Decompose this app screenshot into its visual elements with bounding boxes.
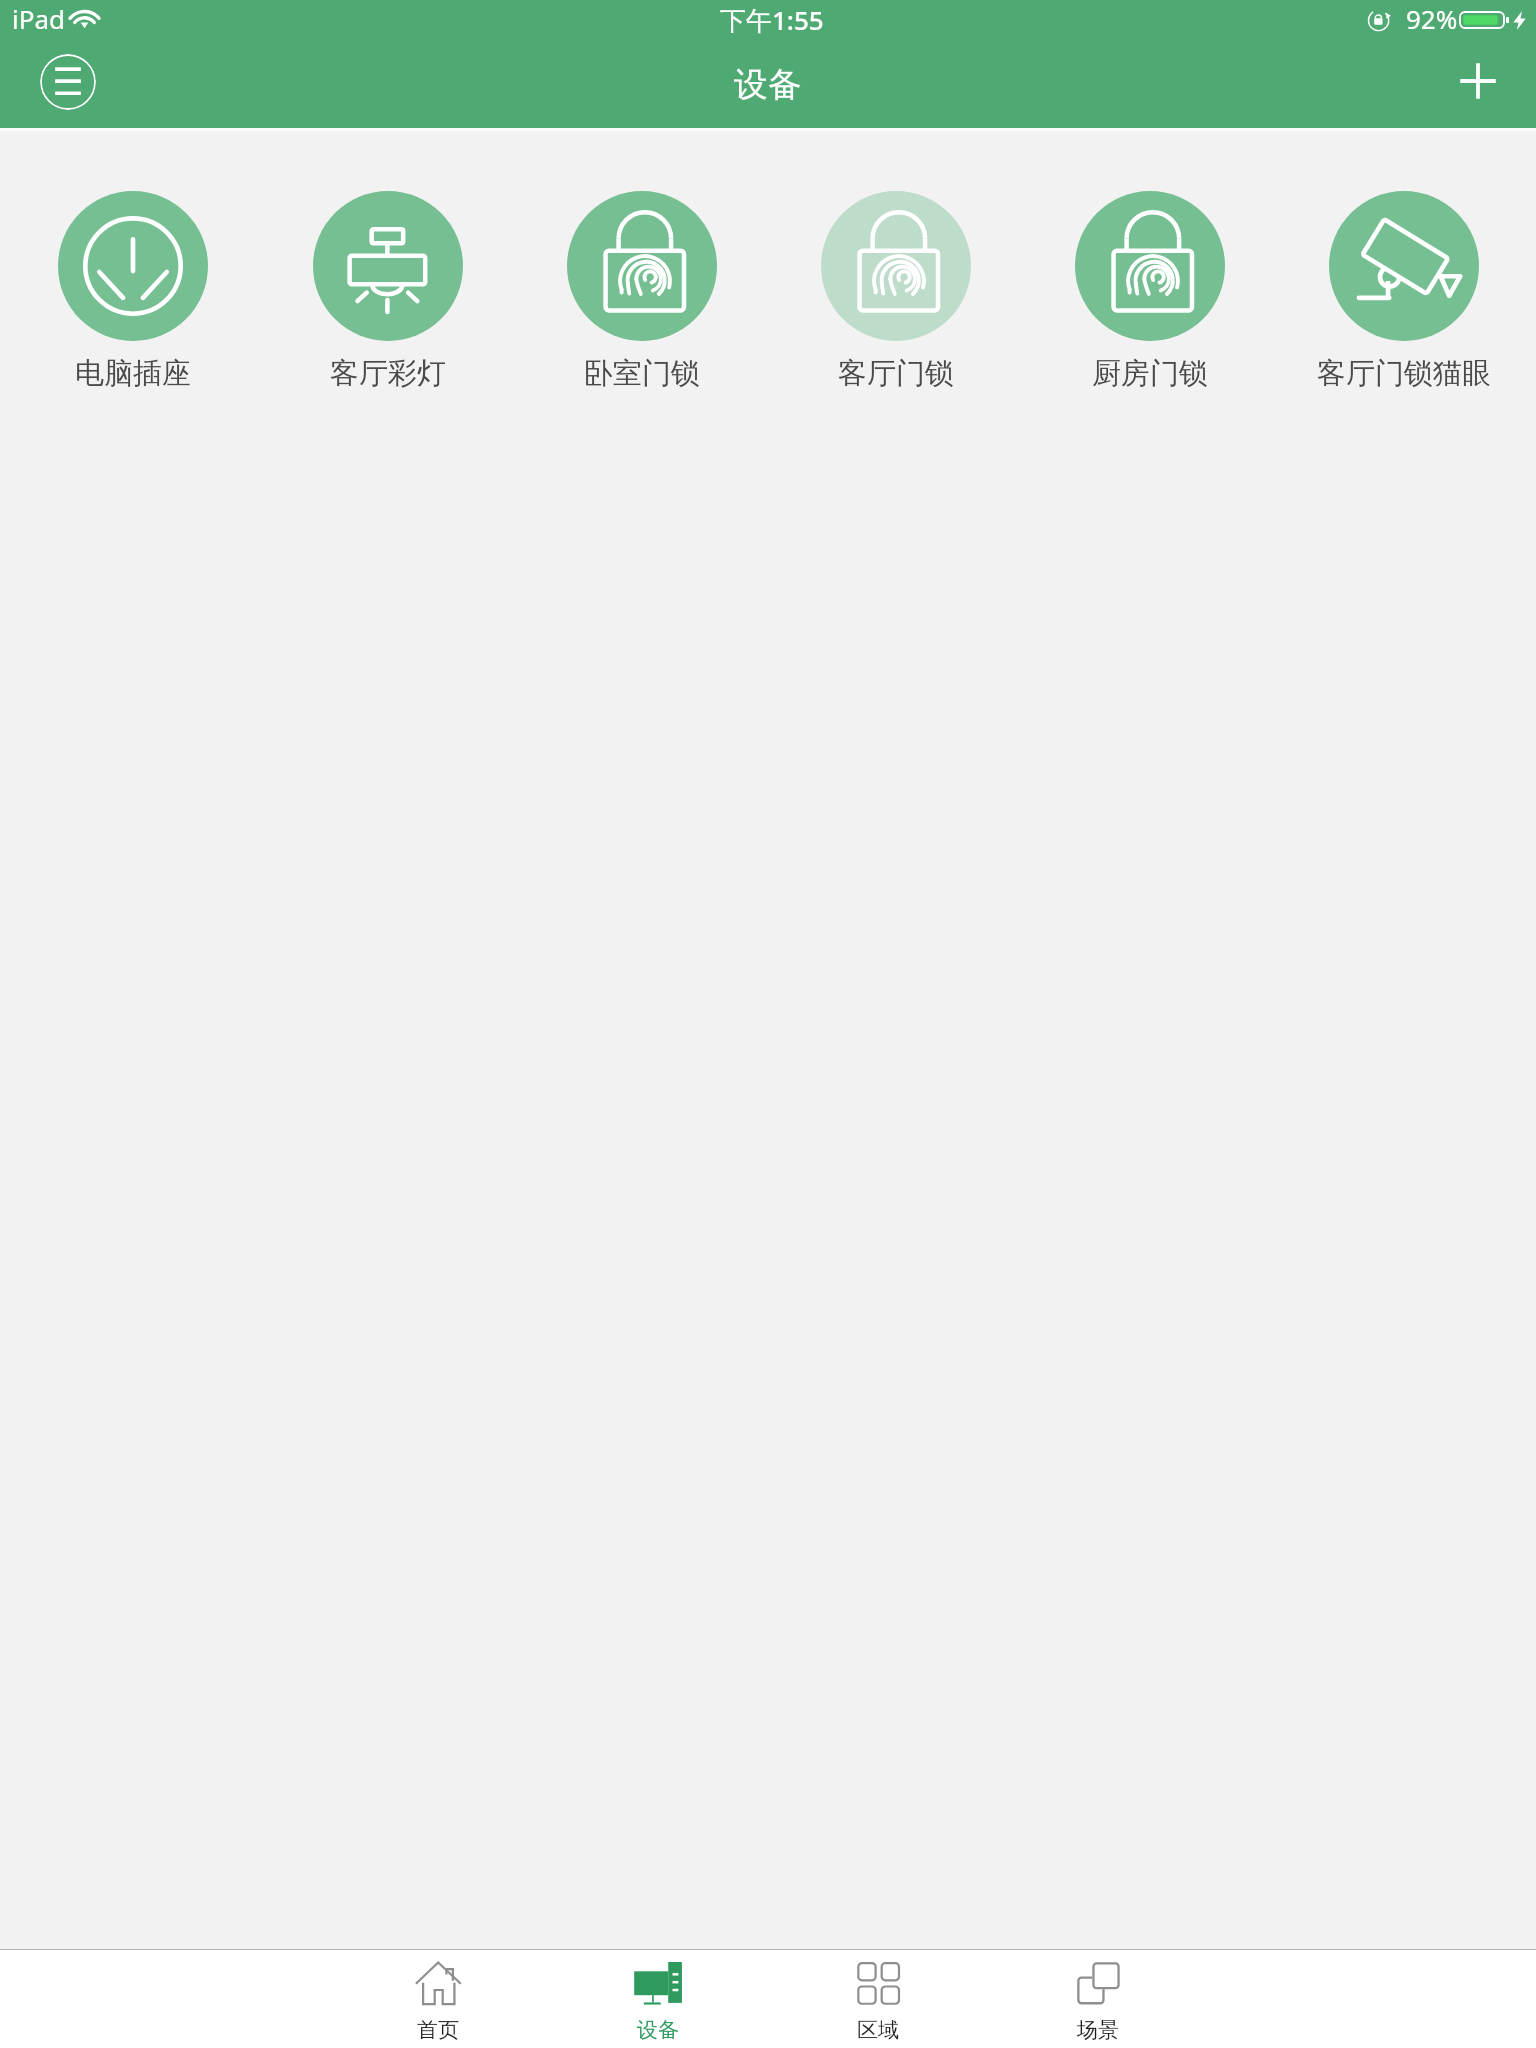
staticText: 区域 bbox=[857, 2017, 899, 2043]
button[interactable]: 客厅彩灯 bbox=[260, 191, 515, 392]
button[interactable]: 设备 bbox=[548, 1949, 768, 2048]
button[interactable]: 厨房门锁 bbox=[1023, 191, 1277, 392]
staticText: 设备 bbox=[734, 63, 802, 106]
staticText: 客厅门锁猫眼 bbox=[1317, 355, 1491, 392]
staticText: 客厅门锁 bbox=[838, 355, 954, 392]
button[interactable]: 区域 bbox=[768, 1949, 988, 2048]
button[interactable]: 卧室门锁 bbox=[515, 191, 769, 392]
staticText: 电脑插座 bbox=[75, 355, 191, 392]
button[interactable]: 电脑插座 bbox=[5, 191, 260, 392]
button[interactable]: 首页 bbox=[328, 1949, 548, 2048]
staticText: 场景 bbox=[1077, 2017, 1119, 2043]
button[interactable]: 客厅门锁 bbox=[769, 191, 1023, 392]
staticText: 客厅彩灯 bbox=[330, 355, 446, 392]
staticText: 设备 bbox=[637, 2017, 679, 2043]
staticText: 92% bbox=[1406, 1, 1458, 36]
staticText: 卧室门锁 bbox=[584, 355, 700, 392]
button[interactable]: 客厅门锁猫眼 bbox=[1277, 191, 1531, 392]
button[interactable]: Menu bbox=[40, 54, 96, 110]
button[interactable]: Add device bbox=[1452, 55, 1504, 107]
button[interactable]: 场景 bbox=[988, 1949, 1208, 2048]
staticText: 下午1:55 bbox=[720, 2, 824, 38]
staticText: 首页 bbox=[417, 2017, 459, 2043]
staticText: 厨房门锁 bbox=[1092, 355, 1208, 392]
staticText: iPad bbox=[12, 1, 66, 36]
